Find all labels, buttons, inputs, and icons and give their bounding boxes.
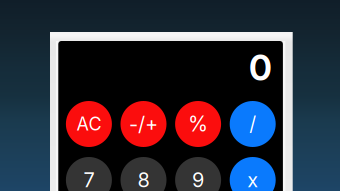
button[interactable]: 7 — [66, 157, 112, 191]
staticText: / — [249, 112, 256, 136]
staticText: 8 — [137, 168, 149, 191]
staticText: x — [247, 168, 258, 191]
staticText: AC — [76, 113, 101, 135]
button[interactable]: x — [230, 157, 276, 191]
staticText: 9 — [192, 168, 204, 191]
button[interactable]: AC — [66, 101, 112, 147]
staticText: % — [188, 111, 208, 136]
button[interactable]: 9 — [175, 157, 221, 191]
staticText: 0 — [249, 47, 272, 89]
button[interactable]: % — [175, 101, 221, 147]
button[interactable]: 8 — [120, 157, 166, 191]
button[interactable]: / — [230, 101, 276, 147]
button[interactable]: -/+ — [120, 101, 166, 147]
staticText: -/+ — [129, 112, 158, 136]
staticText: 7 — [83, 168, 94, 191]
